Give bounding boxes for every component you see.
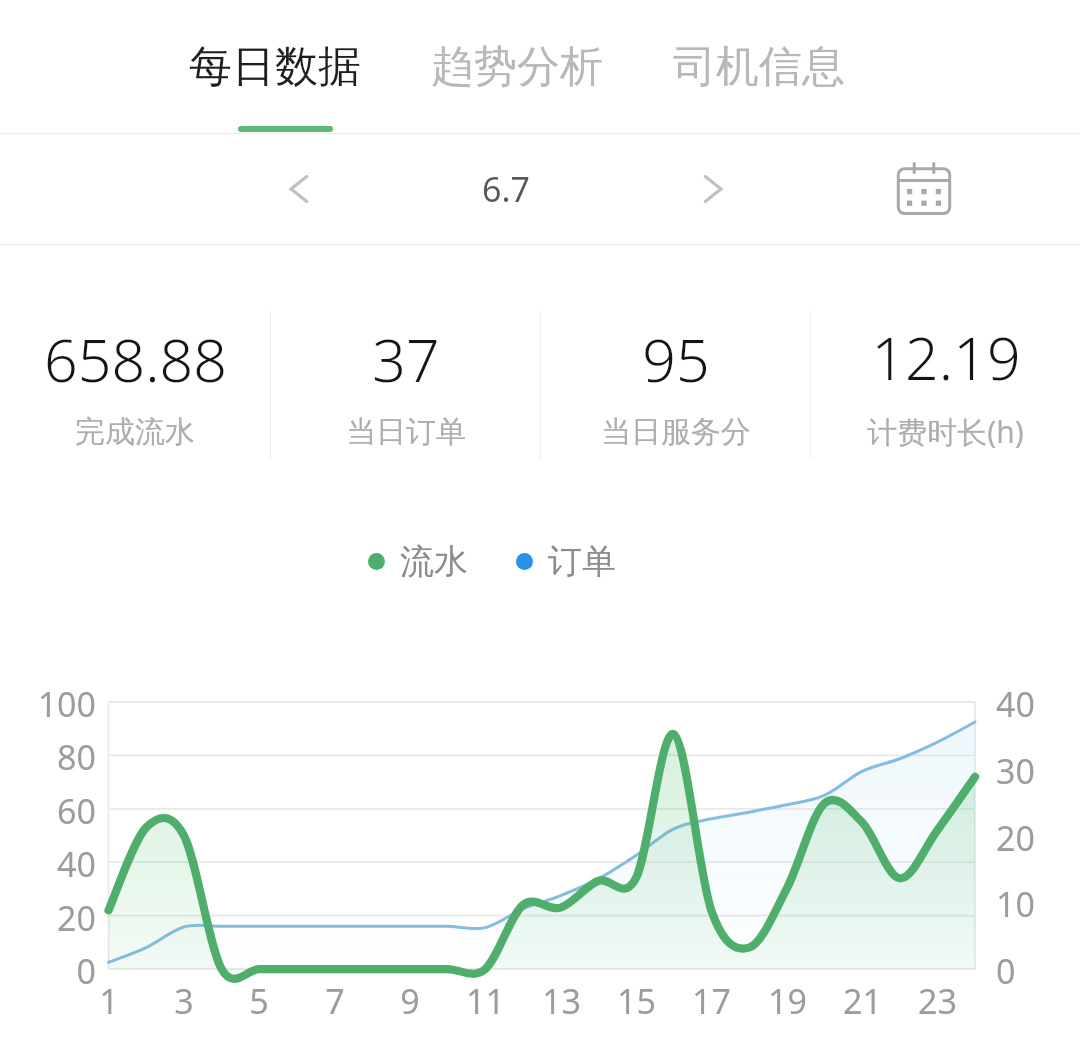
staticText: 0 bbox=[76, 948, 96, 994]
staticText: 当日订单 bbox=[346, 413, 466, 451]
staticText: 趋势分析 bbox=[431, 40, 603, 94]
button[interactable]: 12.19 bbox=[811, 317, 1080, 452]
staticText: 20 bbox=[57, 895, 96, 941]
staticText: 21 bbox=[843, 978, 882, 1024]
button[interactable]: 95 bbox=[541, 319, 810, 451]
staticText: 0 bbox=[996, 948, 1016, 994]
button[interactable]: 658.88 bbox=[0, 319, 270, 451]
staticText: 100 bbox=[37, 681, 96, 727]
staticText: 60 bbox=[57, 788, 96, 834]
staticText: 40 bbox=[57, 841, 96, 887]
staticText: 7 bbox=[325, 978, 345, 1024]
staticText: 23 bbox=[918, 978, 957, 1024]
button[interactable]: 每日数据 bbox=[185, 28, 365, 106]
staticText: 37 bbox=[372, 319, 440, 399]
button[interactable]: 司机信息 bbox=[669, 28, 849, 106]
staticText: 80 bbox=[57, 734, 96, 780]
staticText: 10 bbox=[996, 881, 1035, 927]
staticText: 1 bbox=[99, 978, 119, 1024]
staticText: 9 bbox=[400, 978, 420, 1024]
staticText: 13 bbox=[542, 978, 581, 1024]
staticText: 流水 bbox=[400, 540, 468, 583]
button[interactable]: Next day bbox=[668, 143, 760, 235]
staticText: 17 bbox=[692, 978, 731, 1024]
button[interactable]: Pick date bbox=[880, 145, 968, 233]
staticText: 5 bbox=[249, 978, 269, 1024]
button[interactable]: 趋势分析 bbox=[427, 28, 607, 106]
staticText: 11 bbox=[466, 978, 505, 1024]
staticText: 3 bbox=[174, 978, 194, 1024]
staticText: 20 bbox=[996, 815, 1035, 861]
staticText: 95 bbox=[642, 319, 710, 399]
staticText: 12.19 bbox=[871, 317, 1021, 397]
staticText: 15 bbox=[617, 978, 656, 1024]
staticText: 658.88 bbox=[44, 319, 227, 399]
staticText: 19 bbox=[768, 978, 807, 1024]
staticText: 完成流水 bbox=[75, 413, 195, 451]
staticText: 司机信息 bbox=[673, 40, 845, 94]
button[interactable]: 37 bbox=[271, 319, 540, 451]
button[interactable]: 流水 bbox=[368, 540, 468, 583]
button[interactable]: 订单 bbox=[516, 540, 616, 583]
button[interactable]: Previous day bbox=[252, 143, 344, 235]
staticText: 计费时长(h) bbox=[867, 411, 1024, 452]
staticText: 40 bbox=[996, 681, 1035, 727]
staticText: 订单 bbox=[548, 540, 616, 583]
staticText: 每日数据 bbox=[189, 40, 361, 94]
staticText: 6.7 bbox=[482, 166, 531, 212]
staticText: 30 bbox=[996, 748, 1035, 794]
staticText: 当日服务分 bbox=[601, 413, 751, 451]
